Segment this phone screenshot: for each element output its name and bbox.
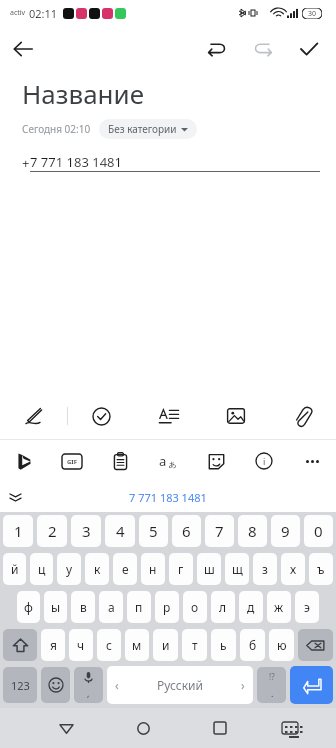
button[interactable]: 7 771 183 1481 xyxy=(119,486,217,509)
staticText: › xyxy=(241,677,245,693)
button[interactable]: Bing xyxy=(0,440,48,482)
button[interactable]: Без категории xyxy=(99,119,197,139)
staticText: х xyxy=(290,561,297,577)
button[interactable]: ш xyxy=(197,553,221,585)
button[interactable]: ъ xyxy=(309,553,333,585)
button[interactable]: л xyxy=(211,591,235,623)
button[interactable]: г xyxy=(169,553,193,585)
button[interactable]: Handwriting xyxy=(0,393,67,439)
button[interactable]: Redo xyxy=(240,26,286,72)
button[interactable]: Info xyxy=(240,440,288,482)
staticText: и xyxy=(162,637,170,653)
staticText: р xyxy=(163,599,171,615)
button[interactable]: н xyxy=(141,553,165,585)
staticText: а xyxy=(108,599,115,615)
button[interactable]: в xyxy=(71,591,95,623)
button[interactable]: Emoji xyxy=(41,667,70,703)
button[interactable]: й xyxy=(3,553,26,585)
button[interactable]: ч xyxy=(69,629,93,661)
button[interactable]: 9 xyxy=(271,515,300,547)
button[interactable]: Text format xyxy=(135,393,202,439)
button[interactable]: 8 xyxy=(238,515,267,547)
button[interactable]: к xyxy=(85,553,109,585)
button[interactable]: 3 xyxy=(71,515,101,547)
button[interactable]: о xyxy=(183,591,207,623)
button[interactable]: е xyxy=(113,553,137,585)
staticText: Без категории xyxy=(108,122,177,136)
button[interactable]: я xyxy=(41,629,65,661)
button[interactable]: More xyxy=(288,440,336,482)
staticText: a xyxy=(159,452,167,470)
button[interactable]: и xyxy=(153,629,178,661)
button[interactable]: Recents xyxy=(199,708,241,748)
button[interactable]: 2 xyxy=(37,515,67,547)
button[interactable]: ф xyxy=(17,591,40,623)
staticText: з xyxy=(262,561,268,577)
button[interactable]: GIF xyxy=(48,440,96,482)
button[interactable]: р xyxy=(155,591,179,623)
button[interactable]: э xyxy=(295,591,319,623)
button[interactable]: Checklist xyxy=(68,393,135,439)
button[interactable]: Stickers xyxy=(192,440,240,482)
button[interactable]: Translate xyxy=(144,440,192,482)
button[interactable]: ‹ xyxy=(107,666,253,704)
button[interactable]: х xyxy=(281,553,305,585)
button[interactable]: 4 xyxy=(105,515,135,547)
button[interactable]: у xyxy=(57,553,81,585)
button[interactable]: Backspace xyxy=(298,629,333,661)
button[interactable]: ь xyxy=(211,629,236,661)
button[interactable]: Numbers xyxy=(3,667,37,703)
button[interactable]: м xyxy=(125,629,149,661)
button[interactable]: Attach xyxy=(269,393,336,439)
staticText: д xyxy=(247,599,255,615)
button[interactable]: щ xyxy=(225,553,249,585)
button[interactable]: Back xyxy=(0,26,46,72)
staticText: й xyxy=(11,561,19,577)
staticText: + xyxy=(22,154,30,172)
staticText: о xyxy=(191,599,199,615)
button[interactable]: з xyxy=(253,553,277,585)
button[interactable]: Voice input xyxy=(74,667,103,703)
button[interactable]: Home xyxy=(122,708,164,748)
button[interactable]: б xyxy=(240,629,265,661)
staticText: п xyxy=(135,599,143,615)
staticText: 7 771 183 1481 xyxy=(30,153,122,171)
button[interactable]: с xyxy=(97,629,121,661)
button[interactable]: ы xyxy=(44,591,67,623)
button[interactable]: Close xyxy=(0,482,30,512)
button[interactable]: ж xyxy=(267,591,291,623)
staticText: у xyxy=(66,561,73,577)
button[interactable]: Punctuation xyxy=(257,667,286,703)
button[interactable]: д xyxy=(239,591,263,623)
button[interactable]: ю xyxy=(269,629,294,661)
button[interactable]: Clipboard xyxy=(96,440,144,482)
button[interactable]: Undo xyxy=(194,26,240,72)
button[interactable]: 0 xyxy=(304,515,333,547)
button[interactable]: Hide keyboard xyxy=(269,708,311,748)
button[interactable]: п xyxy=(127,591,151,623)
button[interactable]: т xyxy=(182,629,207,661)
button[interactable]: ц xyxy=(30,553,53,585)
button[interactable]: 7 xyxy=(205,515,234,547)
button[interactable]: Shift xyxy=(3,629,37,661)
button[interactable]: 5 xyxy=(139,515,168,547)
staticText: 3 xyxy=(82,521,91,541)
button[interactable]: а xyxy=(99,591,123,623)
staticText: г xyxy=(178,561,184,577)
staticText: ч xyxy=(77,637,85,653)
staticText: ш xyxy=(204,561,215,577)
staticText: 02:11 xyxy=(29,6,58,21)
staticText: 4 xyxy=(116,521,125,541)
button[interactable]: Enter xyxy=(290,666,333,704)
staticText: 8 xyxy=(248,521,257,541)
button[interactable]: 6 xyxy=(172,515,201,547)
staticText: ぁ xyxy=(167,457,178,470)
button[interactable]: 1 xyxy=(3,515,33,547)
staticText: ф xyxy=(24,599,33,615)
staticText: е xyxy=(122,561,129,577)
staticText: 9 xyxy=(281,521,290,541)
button[interactable]: Insert image xyxy=(202,393,269,439)
button[interactable]: Save xyxy=(286,26,332,72)
button[interactable]: Back xyxy=(45,708,87,748)
staticText: ю xyxy=(277,637,287,653)
